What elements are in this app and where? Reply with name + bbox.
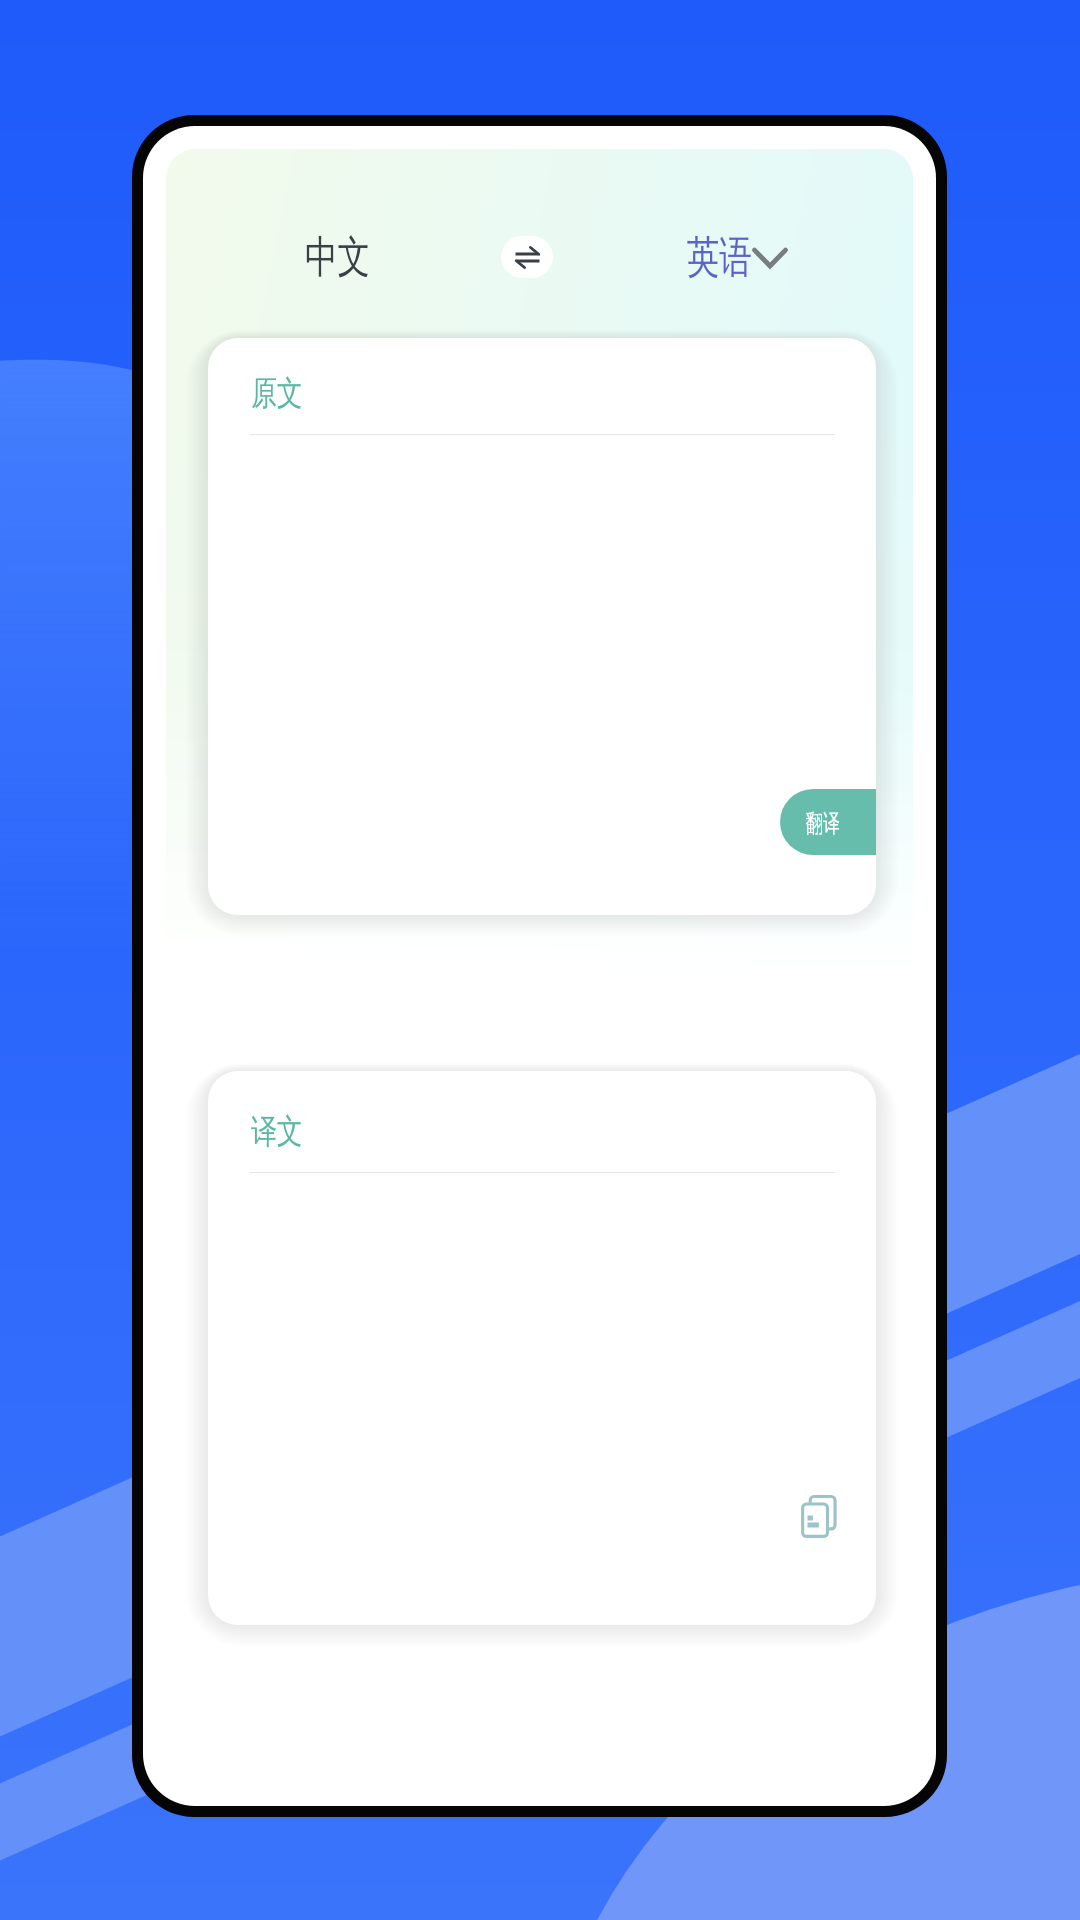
staticText: 翻译	[806, 808, 840, 839]
staticText: 原文	[251, 372, 303, 415]
button[interactable]: Copy translation	[788, 1484, 854, 1550]
button[interactable]: 英语	[646, 224, 828, 290]
button[interactable]: Swap languages	[501, 236, 553, 278]
button[interactable]: 中文	[250, 224, 425, 290]
button[interactable]	[208, 338, 876, 915]
staticText: 译文	[251, 1110, 303, 1153]
staticText: 英语	[687, 230, 752, 285]
button[interactable]	[208, 1071, 876, 1625]
button[interactable]: 翻译	[780, 789, 876, 855]
staticText: 中文	[305, 230, 370, 285]
